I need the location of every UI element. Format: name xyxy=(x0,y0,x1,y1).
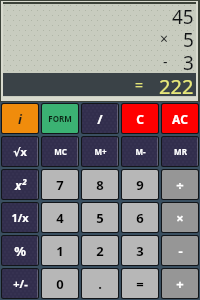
staticText: 2 xyxy=(96,242,104,260)
button[interactable]: AC xyxy=(162,104,198,133)
staticText: - xyxy=(163,52,168,71)
staticText: +/- xyxy=(13,276,28,291)
staticText: i xyxy=(18,110,22,128)
button[interactable]: / xyxy=(82,104,118,133)
staticText: √x xyxy=(13,144,27,159)
button[interactable]: C xyxy=(122,104,158,133)
button[interactable]: % xyxy=(2,236,38,265)
staticText: × xyxy=(160,29,169,48)
button[interactable]: FORM xyxy=(42,104,78,133)
button[interactable]: +/- xyxy=(2,269,38,298)
button[interactable]: MC xyxy=(42,137,78,166)
staticText: MR xyxy=(174,146,187,157)
staticText: ÷ xyxy=(176,176,184,194)
button[interactable]: 0 xyxy=(42,269,78,298)
staticText: 6 xyxy=(136,209,144,227)
staticText: AC xyxy=(172,111,188,127)
button[interactable]: 6 xyxy=(122,203,158,232)
button[interactable]: × xyxy=(162,203,198,232)
staticText: - xyxy=(178,242,183,260)
button[interactable]: 8 xyxy=(82,170,118,199)
staticText: 1 xyxy=(56,242,64,260)
button[interactable]: = xyxy=(122,269,158,298)
button[interactable]: 7 xyxy=(42,170,78,199)
button[interactable]: M- xyxy=(122,137,158,166)
button[interactable]: 4 xyxy=(42,203,78,232)
staticText: = xyxy=(136,275,144,293)
button[interactable]: i xyxy=(2,104,38,133)
staticText: M+ xyxy=(94,146,107,157)
button[interactable]: 9 xyxy=(122,170,158,199)
button[interactable]: MR xyxy=(162,137,198,166)
staticText: C xyxy=(136,111,144,127)
button[interactable]: - xyxy=(162,236,198,265)
staticText: 0 xyxy=(56,275,64,293)
staticText: FORM xyxy=(48,113,72,124)
staticText: M- xyxy=(135,146,146,157)
staticText: + xyxy=(176,275,184,293)
staticText: 4 xyxy=(56,209,64,227)
staticText: / xyxy=(97,110,103,128)
staticText: . xyxy=(98,275,102,293)
button[interactable]: 1 xyxy=(42,236,78,265)
button[interactable]: 3 xyxy=(122,236,158,265)
button[interactable]: M+ xyxy=(82,137,118,166)
staticText: MC xyxy=(54,146,67,157)
staticText: 1/x xyxy=(11,210,29,225)
button[interactable]: 2 xyxy=(82,236,118,265)
button[interactable]: . xyxy=(82,269,118,298)
staticText: 3 xyxy=(136,242,144,260)
staticText: 8 xyxy=(96,176,104,194)
staticText: x² xyxy=(15,177,26,193)
button[interactable]: + xyxy=(162,269,198,298)
staticText: 7 xyxy=(56,176,64,194)
button[interactable]: √x xyxy=(2,137,38,166)
button[interactable]: x² xyxy=(2,170,38,199)
button[interactable]: 1/x xyxy=(2,203,38,232)
staticText: × xyxy=(176,209,184,227)
button[interactable]: 5 xyxy=(82,203,118,232)
staticText: % xyxy=(14,242,26,260)
staticText: 9 xyxy=(136,176,144,194)
staticText: 5 xyxy=(96,209,104,227)
staticText: 5 xyxy=(183,27,194,50)
staticText: 222 xyxy=(159,73,194,96)
staticText: 45 xyxy=(172,4,194,27)
staticText: = xyxy=(135,75,144,94)
staticText: 3 xyxy=(183,50,194,73)
button[interactable]: ÷ xyxy=(162,170,198,199)
